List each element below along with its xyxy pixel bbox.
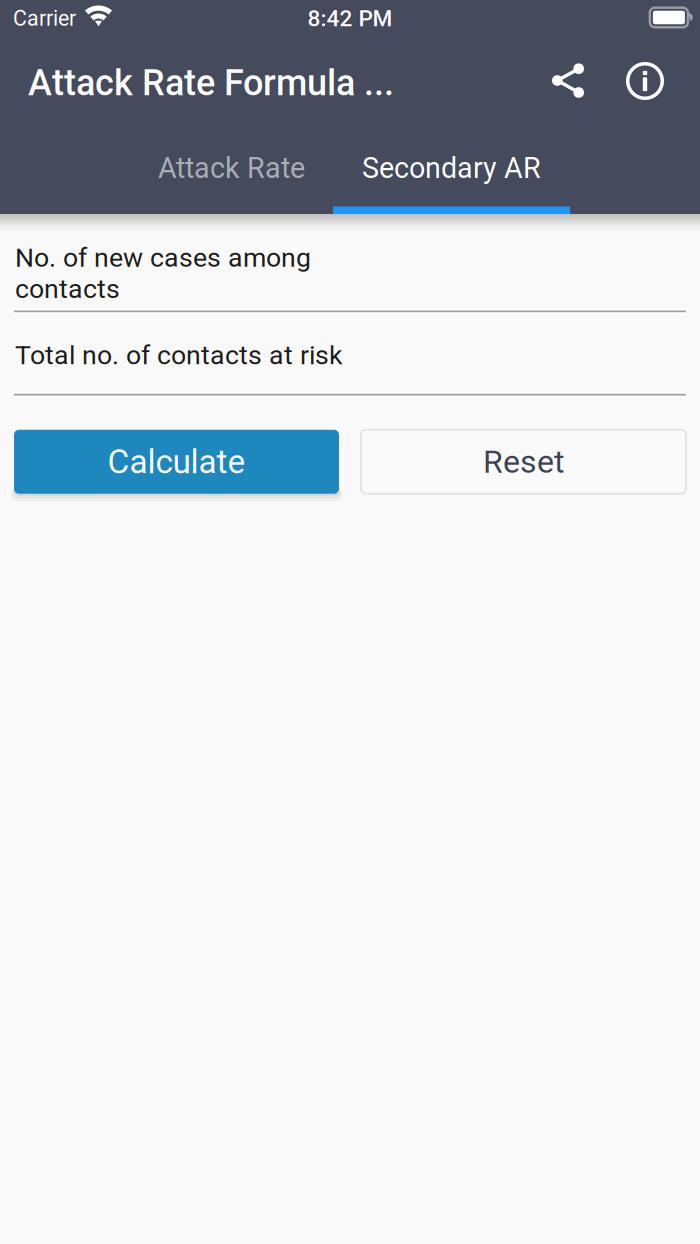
button[interactable]: Information	[620, 50, 670, 112]
staticText: Reset	[483, 443, 564, 480]
staticText: Attack Rate	[158, 151, 305, 185]
staticText: 8:42 PM	[307, 5, 392, 32]
button[interactable]: Calculate	[14, 430, 339, 494]
staticText: Carrier	[13, 6, 76, 31]
button[interactable]: Secondary AR	[333, 122, 570, 214]
button[interactable]: Share	[543, 50, 593, 112]
staticText: Secondary AR	[362, 151, 541, 185]
button[interactable]: Attack Rate	[130, 122, 333, 214]
staticText: Total no. of contacts at risk	[15, 339, 343, 371]
staticText: No. of new cases among contacts	[15, 242, 311, 304]
button[interactable]: Reset	[361, 430, 686, 494]
staticText: Attack Rate Formula ...	[28, 62, 394, 104]
staticText: Calculate	[107, 442, 245, 481]
